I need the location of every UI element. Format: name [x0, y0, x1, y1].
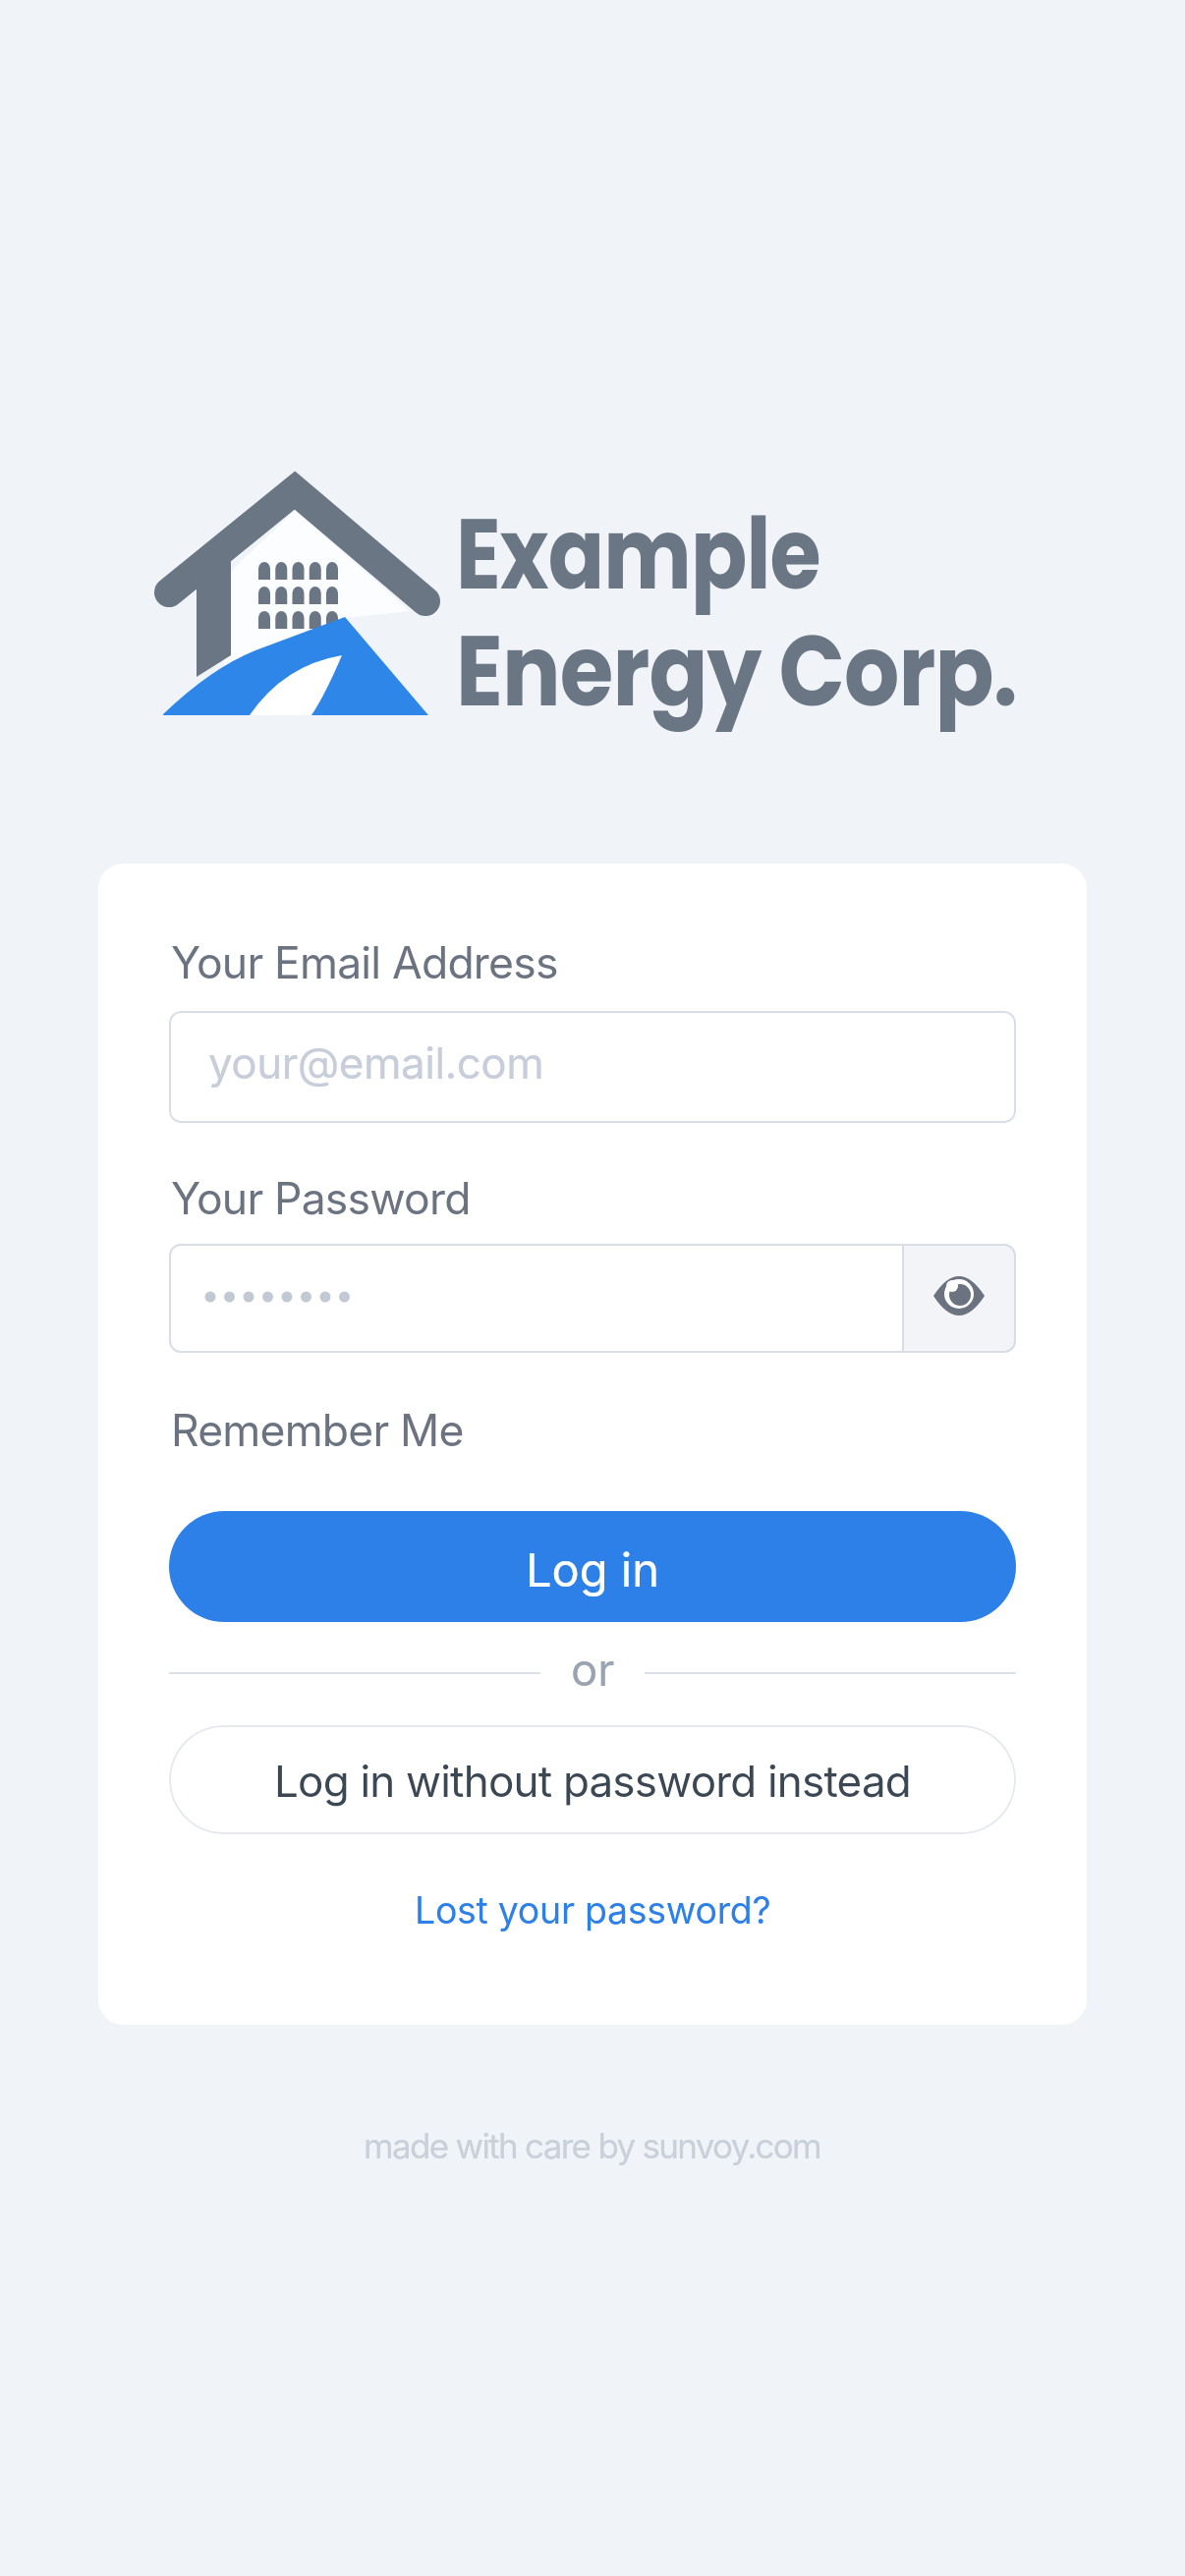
staticText: Log in — [526, 1541, 659, 1597]
staticText: Log in without password instead — [274, 1755, 911, 1807]
staticText: or — [571, 1643, 615, 1697]
staticText: made with care by sunvoy.com — [364, 2125, 821, 2166]
staticText: Example — [456, 485, 820, 623]
staticText: Lost your password? — [415, 1888, 771, 1932]
staticText: Energy Corp. — [456, 602, 1017, 740]
staticText: Your Email Address — [171, 936, 558, 989]
staticText: your@email.com — [208, 1036, 544, 1089]
staticText: Remember Me — [171, 1404, 464, 1457]
staticText: Your Password — [171, 1172, 471, 1225]
